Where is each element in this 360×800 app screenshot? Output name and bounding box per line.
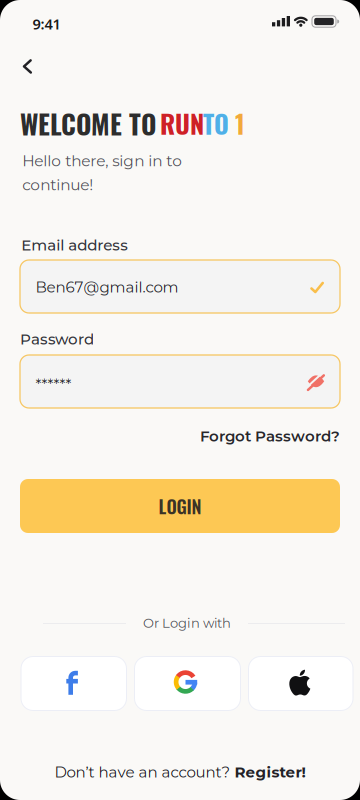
- button[interactable]: [21, 656, 126, 710]
- staticText: Password: [20, 330, 94, 348]
- staticText: Don’t have an account? Register!: [54, 763, 305, 781]
- staticText: WELCOME TO: [20, 104, 156, 143]
- staticText: ******: [35, 375, 71, 393]
- staticText: Forgot Password?: [200, 427, 340, 445]
- staticText: 1: [235, 105, 245, 142]
- staticText: TO: [203, 105, 229, 142]
- staticText: LOGIN: [158, 493, 201, 519]
- button[interactable]: ******: [20, 355, 340, 408]
- staticText: Email address: [21, 236, 128, 254]
- staticText: 9:41: [32, 14, 60, 33]
- button[interactable]: [248, 656, 353, 710]
- button[interactable]: LOGIN: [20, 479, 340, 533]
- button[interactable]: Don’t have an account? Register!: [0, 761, 360, 783]
- button[interactable]: Forgot Password?: [20, 426, 340, 446]
- button[interactable]: Ben67@gmail.com: [20, 260, 340, 313]
- button[interactable]: [8, 46, 48, 86]
- staticText: Or Login with: [143, 615, 231, 631]
- staticText: Ben67@gmail.com: [35, 278, 178, 296]
- staticText: Hello there, sign in to continue!: [22, 151, 182, 194]
- staticText: RUN: [160, 105, 204, 142]
- button[interactable]: [134, 656, 240, 710]
